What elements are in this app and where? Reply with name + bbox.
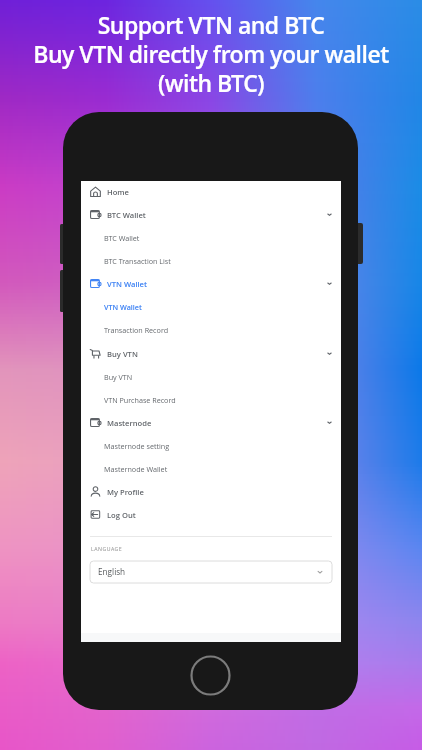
- staticText: English: [98, 566, 126, 577]
- staticText: Masternode Wallet: [104, 464, 168, 474]
- staticText: Buy VTN directly from your wallet: [0, 38, 422, 69]
- staticText: Support VTN and BTC: [0, 9, 422, 40]
- staticText: Buy VTN: [104, 372, 133, 382]
- button[interactable]: Masternode Wallet: [81, 457, 341, 480]
- button[interactable]: VTN Wallet: [81, 295, 341, 318]
- button[interactable]: Buy VTN: [81, 365, 341, 388]
- button[interactable]: VTN Purchase Record: [81, 388, 341, 411]
- staticText: My Profile: [107, 487, 144, 497]
- staticText: Home: [107, 187, 129, 197]
- button[interactable]: English: [90, 561, 332, 583]
- staticText: VTN Wallet: [104, 302, 142, 312]
- staticText: Masternode setting: [104, 441, 170, 451]
- button[interactable]: Buy VTN: [81, 342, 341, 365]
- button[interactable]: BTC Transaction List: [81, 249, 341, 272]
- button[interactable]: Masternode: [81, 411, 341, 434]
- staticText: Buy VTN: [107, 349, 138, 359]
- staticText: Masternode: [107, 418, 152, 428]
- staticText: BTC Wallet: [104, 233, 140, 243]
- staticText: BTC Wallet: [107, 210, 146, 220]
- button[interactable]: Transaction Record: [81, 318, 341, 341]
- button[interactable]: BTC Wallet: [81, 203, 341, 226]
- button[interactable]: BTC Wallet: [81, 226, 341, 249]
- button[interactable]: Home: [81, 180, 341, 203]
- button[interactable]: My Profile: [81, 480, 341, 503]
- staticText: VTN Wallet: [107, 279, 147, 289]
- staticText: VTN Purchase Record: [104, 395, 176, 405]
- button[interactable]: Masternode setting: [81, 434, 341, 457]
- button[interactable]: Log Out: [81, 503, 341, 526]
- staticText: Transaction Record: [104, 325, 169, 335]
- button[interactable]: VTN Wallet: [81, 272, 341, 295]
- staticText: Log Out: [107, 510, 136, 520]
- staticText: BTC Transaction List: [104, 256, 171, 266]
- staticText: LANGUAGE: [91, 545, 123, 552]
- staticText: (with BTC): [0, 67, 422, 98]
